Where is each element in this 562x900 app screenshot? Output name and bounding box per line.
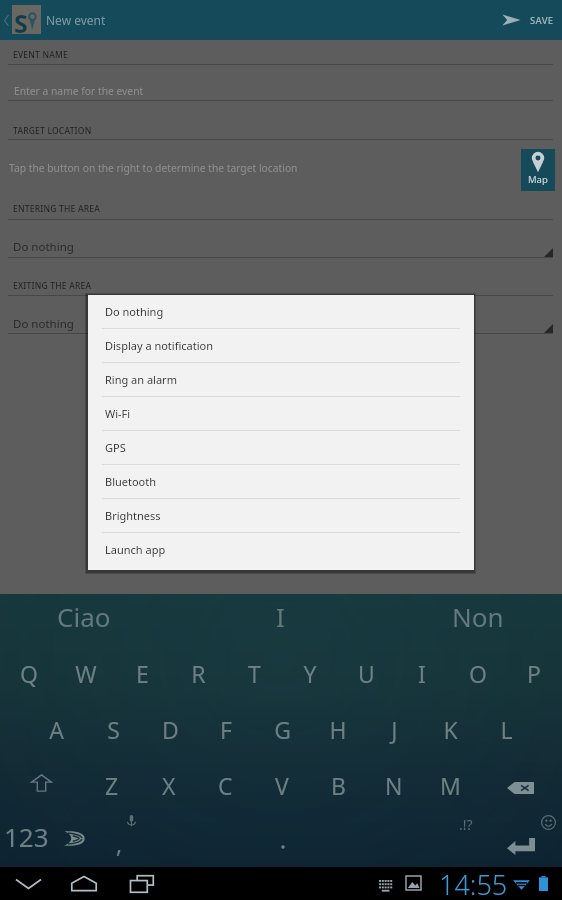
button[interactable]: W — [57, 645, 114, 701]
button[interactable]: Z — [83, 757, 140, 813]
staticText: Launch app — [105, 542, 166, 557]
button[interactable]: R — [170, 645, 226, 701]
button[interactable]: Navigate up — [0, 0, 12, 40]
button[interactable]: Wi-Fi — [88, 397, 474, 431]
button[interactable]: F — [198, 701, 254, 757]
staticText: Bluetooth — [105, 474, 157, 489]
button[interactable]: G — [254, 701, 310, 757]
staticText: Display a notification — [105, 338, 214, 353]
staticText: C — [218, 770, 233, 801]
staticText: V — [275, 770, 289, 801]
staticText: 123 — [4, 819, 49, 854]
button[interactable]: Home — [56, 867, 112, 900]
button[interactable]: Launch app — [88, 533, 474, 567]
staticText: Tap the button on the right to determine… — [9, 161, 298, 175]
button[interactable]: Q — [0, 645, 57, 701]
staticText: Ring an alarm — [105, 372, 177, 387]
staticText: New event — [46, 12, 106, 28]
staticText: W — [75, 658, 97, 689]
button[interactable]: Recent apps — [114, 867, 170, 900]
button[interactable]: Ring an alarm — [88, 363, 474, 397]
button[interactable]: T — [226, 645, 282, 701]
staticText: R — [191, 658, 206, 689]
staticText: B — [331, 770, 346, 801]
button[interactable]: .!? — [440, 813, 492, 864]
staticText: Y — [303, 658, 317, 689]
staticText: Do nothing — [13, 239, 74, 255]
staticText: , — [116, 828, 123, 859]
staticText: N — [385, 770, 403, 801]
staticText: I — [418, 658, 426, 689]
button[interactable]: Backspace — [478, 757, 562, 813]
staticText: G — [274, 714, 291, 745]
button[interactable]: D — [142, 701, 198, 757]
staticText: D — [162, 714, 179, 745]
staticText: Wi-Fi — [105, 406, 131, 421]
button[interactable]: Shift — [0, 757, 83, 813]
staticText: Brightness — [105, 508, 161, 523]
button[interactable]: V — [254, 757, 310, 813]
staticText: TARGET LOCATION — [13, 125, 92, 137]
staticText: Map — [528, 173, 548, 186]
button[interactable]: SAVE — [492, 0, 562, 40]
button[interactable]: B — [310, 757, 366, 813]
staticText: E — [136, 658, 149, 689]
button[interactable]: Y — [282, 645, 338, 701]
staticText: U — [358, 658, 375, 689]
button[interactable]: Non — [404, 594, 552, 644]
staticText: T — [248, 658, 261, 689]
staticText: M — [440, 770, 461, 801]
button[interactable]: U — [338, 645, 394, 701]
other: Emoji — [541, 815, 556, 830]
button[interactable]: Brightness — [88, 499, 474, 533]
staticText: X — [162, 770, 176, 801]
staticText: Enter a name for the event — [14, 84, 144, 98]
staticText: F — [220, 714, 232, 745]
button[interactable]: 123 — [0, 813, 54, 864]
staticText: S — [14, 6, 28, 35]
button[interactable]: Back — [0, 867, 56, 900]
button[interactable]: N — [366, 757, 422, 813]
button[interactable]: H — [310, 701, 366, 757]
button[interactable]: SwiftKey menu — [56, 813, 92, 864]
button[interactable]: Ciao — [10, 594, 158, 644]
staticText: Do nothing — [13, 316, 74, 332]
staticText: O — [469, 658, 487, 689]
button[interactable]: J — [366, 701, 422, 757]
staticText: L — [500, 714, 513, 745]
button[interactable]: P — [506, 645, 562, 701]
staticText: .!? — [459, 815, 473, 834]
button[interactable]: K — [422, 701, 478, 757]
staticText: EXITING THE AREA — [13, 280, 92, 292]
button[interactable]: Do nothing — [88, 295, 474, 329]
button[interactable]: I — [206, 594, 354, 644]
button[interactable]: O — [450, 645, 506, 701]
button[interactable]: M — [422, 757, 478, 813]
staticText: SAVE — [530, 14, 554, 27]
button[interactable]: Enter — [492, 813, 550, 864]
staticText: S — [107, 714, 120, 745]
button[interactable]: Map — [521, 149, 555, 191]
staticText: K — [443, 714, 458, 745]
staticText: GPS — [105, 440, 126, 455]
button[interactable]: L — [478, 701, 534, 757]
staticText: ENTERING THE AREA — [13, 203, 100, 215]
button[interactable]: E — [114, 645, 170, 701]
button[interactable]: Bluetooth — [88, 465, 474, 499]
staticText: H — [329, 714, 347, 745]
staticText: 14:55 — [439, 866, 508, 899]
button[interactable]: Display a notification — [88, 329, 474, 363]
button[interactable]: A — [28, 701, 85, 757]
staticText: J — [391, 714, 398, 745]
staticText: Ciao — [57, 599, 111, 634]
button[interactable]: X — [140, 757, 197, 813]
button[interactable]: C — [197, 757, 254, 813]
staticText: P — [527, 658, 541, 689]
staticText: Do nothing — [105, 304, 164, 319]
button[interactable]: S — [85, 701, 142, 757]
button[interactable]: GPS — [88, 431, 474, 465]
button[interactable]: , — [98, 813, 140, 864]
staticText: Z — [105, 770, 119, 801]
button[interactable]: I — [394, 645, 450, 701]
